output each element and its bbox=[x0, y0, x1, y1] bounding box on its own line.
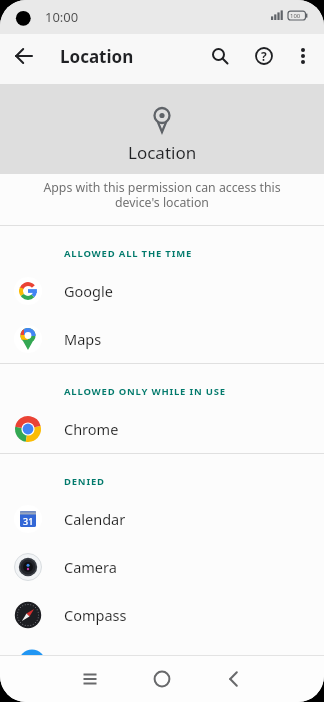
button[interactable]: Maps bbox=[0, 315, 324, 363]
staticText: ALLOWED ALL THE TIME bbox=[64, 247, 193, 260]
staticText: Contacts bbox=[64, 653, 124, 673]
button[interactable] bbox=[0, 34, 48, 78]
button[interactable] bbox=[142, 656, 182, 702]
button[interactable]: Compass bbox=[0, 591, 324, 639]
staticText: Camera bbox=[64, 557, 117, 577]
button[interactable] bbox=[70, 656, 110, 702]
staticText: Chrome bbox=[64, 419, 119, 439]
staticText: Google bbox=[64, 281, 113, 301]
staticText: 100 bbox=[290, 12, 301, 20]
staticText: Location bbox=[60, 45, 134, 68]
button[interactable]: Chrome bbox=[0, 405, 324, 453]
staticText: Calendar bbox=[64, 509, 126, 529]
button[interactable]: 31 bbox=[0, 495, 324, 543]
staticText: Maps bbox=[64, 329, 102, 349]
button[interactable]: Google bbox=[0, 267, 324, 315]
button[interactable] bbox=[200, 34, 240, 78]
button[interactable]: Camera bbox=[0, 543, 324, 591]
staticText: Compass bbox=[64, 605, 127, 625]
staticText: ? bbox=[261, 48, 267, 64]
staticText: DENIED bbox=[64, 475, 105, 488]
staticText: Apps with this permission can access thi… bbox=[43, 179, 281, 210]
staticText: 10:00 bbox=[45, 8, 79, 26]
staticText: Location bbox=[128, 141, 197, 164]
button[interactable]: ? bbox=[244, 34, 284, 78]
button[interactable]: Contacts bbox=[0, 639, 324, 687]
staticText: 31 bbox=[23, 515, 34, 527]
button[interactable] bbox=[283, 34, 323, 78]
staticText: ALLOWED ONLY WHILE IN USE bbox=[64, 385, 226, 398]
button[interactable] bbox=[214, 656, 254, 702]
